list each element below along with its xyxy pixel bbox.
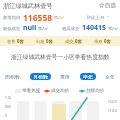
staticText: 在售 — [7, 39, 16, 44]
staticText: 0套 — [46, 38, 53, 44]
button[interactable]: 季度 — [57, 73, 73, 80]
staticText: 带看热度 — [22, 88, 41, 94]
staticText: 0套 — [104, 38, 111, 44]
button[interactable]: 周指数 — [2, 73, 23, 80]
staticText: 最高成交 — [62, 26, 80, 31]
staticText: 浙江绿城武林壹号一小区带看热度指数 — [11, 53, 110, 60]
button[interactable]: 月指数 — [30, 73, 51, 80]
other: 自选 — [99, 3, 104, 8]
button[interactable]: 挂牌均价 — [79, 88, 105, 94]
button[interactable]: 带看 — [94, 38, 111, 44]
staticText: 116558 — [23, 12, 53, 21]
staticText: 600 — [5, 105, 11, 109]
button[interactable]: 成交 — [65, 38, 82, 44]
staticText: 月指数 — [33, 74, 48, 79]
staticText: 浙江绿城武林壹号 — [3, 2, 53, 10]
staticText: 成交 — [65, 39, 74, 44]
staticText: 140415 — [82, 23, 107, 32]
staticText: 成交均价 — [51, 88, 70, 94]
button[interactable]: 半年 — [80, 73, 96, 80]
staticText: 元/㎡ — [54, 14, 65, 20]
staticText: 0套 — [75, 38, 82, 44]
staticText: 挂牌均价 — [86, 88, 105, 94]
staticText: 带看 — [94, 39, 103, 44]
staticText: 出租 — [36, 39, 45, 44]
staticText: 0 — [5, 114, 7, 118]
staticText: null — [23, 23, 37, 32]
staticText: 环比上月 — [87, 15, 105, 20]
button[interactable]: 自选 — [98, 1, 117, 10]
button[interactable]: 在售 — [7, 38, 24, 44]
staticText: 11.6万 — [108, 109, 118, 113]
staticText: 参考均价 — [3, 15, 21, 20]
staticText: 周指数 — [5, 74, 20, 79]
staticText: 季度 — [60, 74, 70, 79]
staticText: 半年 — [83, 74, 93, 79]
staticText: 1.2k — [5, 96, 12, 100]
button[interactable]: 出租 — [36, 38, 53, 44]
staticText: 0套 — [17, 38, 24, 44]
staticText: 最低成交 — [3, 26, 21, 31]
staticText: 全年 — [105, 74, 115, 79]
staticText: 12.0万 — [108, 100, 118, 104]
staticText: 自选 — [105, 2, 116, 9]
button[interactable]: 全年 — [102, 73, 118, 80]
button[interactable]: 成交均价 — [44, 88, 70, 94]
staticText: - — [107, 13, 109, 20]
staticText: 元/㎡ — [108, 25, 119, 31]
button[interactable]: 带看热度 — [15, 88, 41, 94]
staticText: 元/㎡ — [38, 25, 49, 31]
